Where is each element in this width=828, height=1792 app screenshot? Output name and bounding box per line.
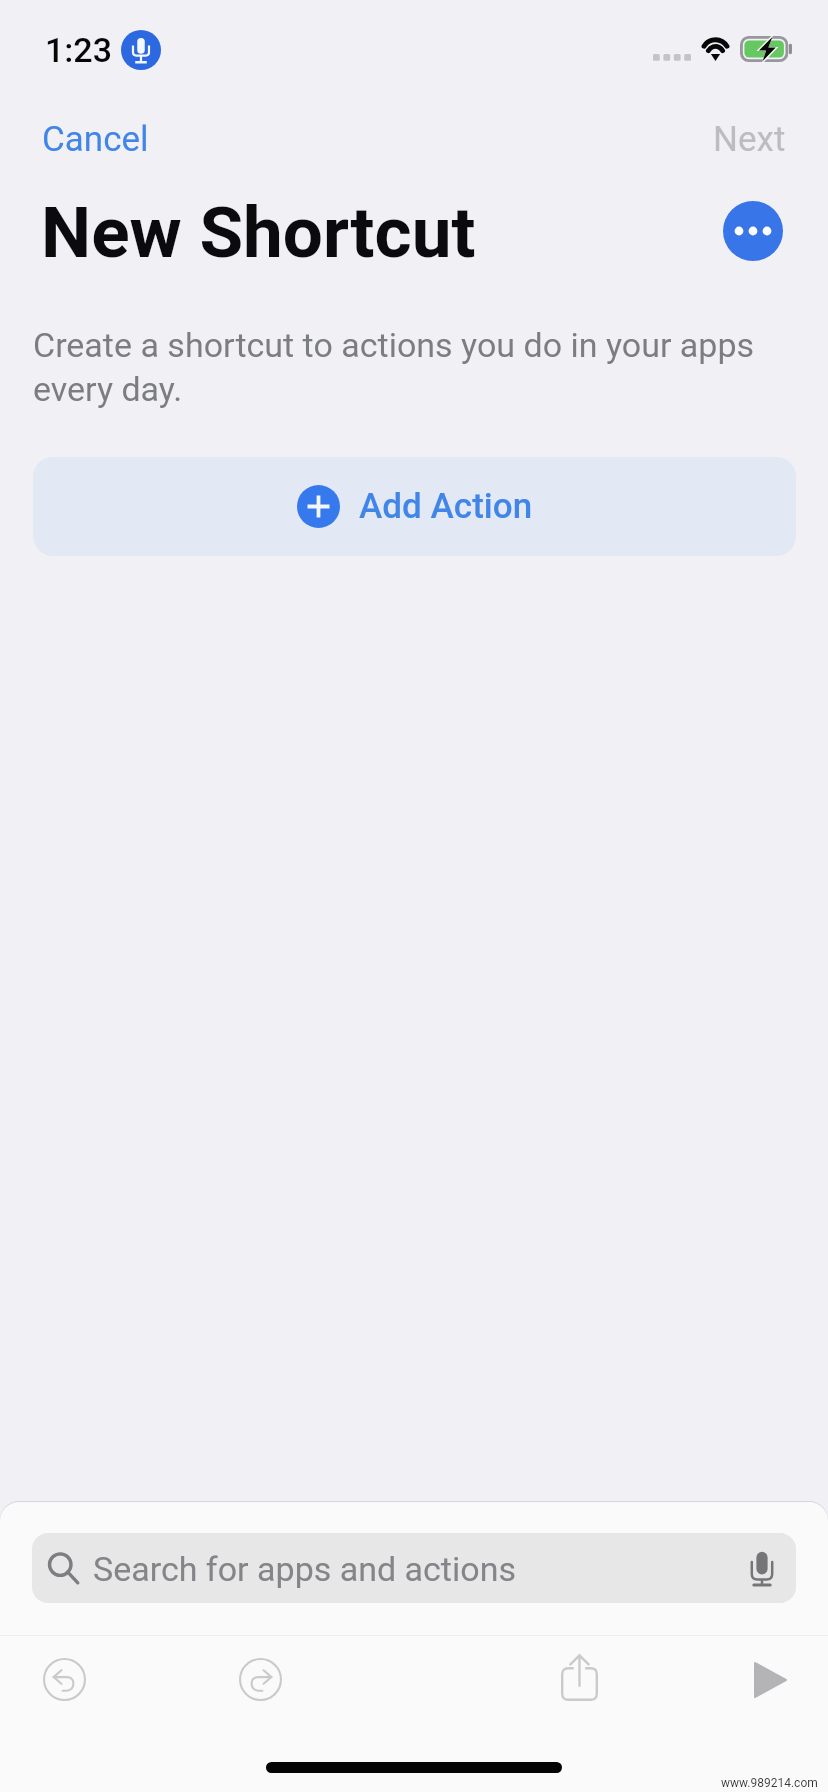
button[interactable]: Undo [43,1658,86,1701]
button[interactable]: Redo [239,1658,282,1701]
button[interactable]: More options [723,201,783,261]
button[interactable]: Voice search [742,1548,782,1588]
staticText: 1:23 [45,30,112,70]
staticText: Search for apps and actions [93,1549,516,1589]
staticText: Create a shortcut to actions you do in y… [33,325,788,409]
button[interactable]: Cancel [0,109,191,170]
staticText: Cancel [42,119,149,160]
button[interactable]: Run [754,1662,787,1698]
button[interactable]: Add Action [33,457,796,556]
staticText: Add Action [359,486,533,527]
button[interactable]: Next [671,109,828,170]
staticText: Next [713,119,786,160]
button[interactable]: Search for apps and actions [32,1533,796,1603]
staticText: www.989214.com [721,1776,818,1790]
button[interactable]: Share [561,1654,598,1701]
other: Microphone in use [121,30,161,70]
staticText: New Shortcut [41,191,476,274]
